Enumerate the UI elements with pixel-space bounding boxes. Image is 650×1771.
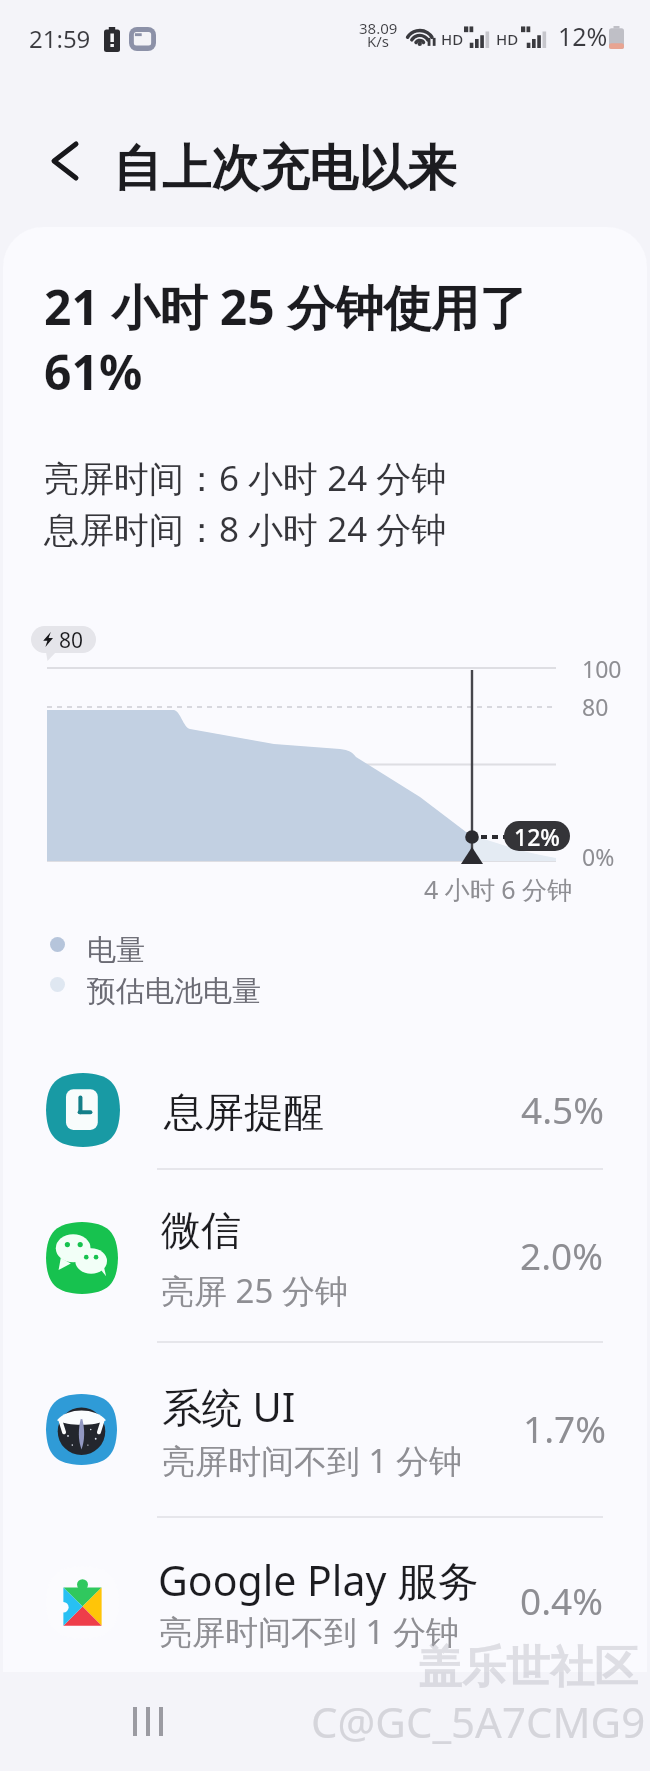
staticText: HD	[441, 29, 464, 49]
staticText: 微信	[161, 1205, 241, 1255]
staticText: 21:59	[29, 22, 91, 55]
staticText: 亮屏时间不到 1 分钟	[159, 1609, 460, 1654]
staticText: 预估电池电量	[87, 973, 261, 1010]
staticText: HD	[496, 29, 519, 49]
staticText: 38.09	[359, 18, 398, 38]
staticText: K/s	[367, 31, 390, 51]
button[interactable]: 微信	[3, 1175, 647, 1341]
button[interactable]: Google Play 服务	[3, 1523, 647, 1672]
button[interactable]: Back	[33, 129, 97, 193]
staticText: 息屏提醒	[164, 1087, 324, 1137]
button[interactable]: 息屏提醒	[3, 1046, 647, 1168]
staticText: 12%	[514, 821, 560, 851]
button[interactable]: Recent apps	[117, 1692, 179, 1750]
staticText: 100	[582, 653, 622, 684]
staticText: C@GC_5A7CMG9	[311, 1693, 646, 1750]
staticText: 电量	[87, 932, 145, 969]
staticText: 亮屏 25 分钟	[161, 1268, 348, 1313]
staticText: 1.7%	[523, 1403, 606, 1453]
staticText: 4 小时 6 分钟	[424, 872, 573, 906]
staticText: 80	[582, 691, 609, 722]
staticText: 12%	[558, 19, 608, 53]
staticText: 盖乐世社区	[418, 1640, 638, 1695]
staticText: 0.4%	[520, 1575, 603, 1625]
staticText: Google Play 服务	[158, 1552, 479, 1608]
staticText: 4.5%	[521, 1084, 604, 1134]
staticText: 亮屏时间不到 1 分钟	[162, 1438, 463, 1483]
staticText: 息屏时间：8 小时 24 分钟	[44, 505, 447, 553]
button[interactable]: 系统 UI	[3, 1348, 647, 1516]
staticText: 自上次充电以来	[113, 138, 456, 200]
staticText: 2.0%	[520, 1230, 603, 1280]
staticText: 系统 UI	[162, 1379, 296, 1434]
staticText: 亮屏时间：6 小时 24 分钟	[44, 454, 447, 502]
staticText: 0%	[582, 841, 615, 872]
staticText: 80	[59, 626, 84, 653]
staticText: 21 小时 25 分钟使用了 61%	[44, 274, 554, 404]
